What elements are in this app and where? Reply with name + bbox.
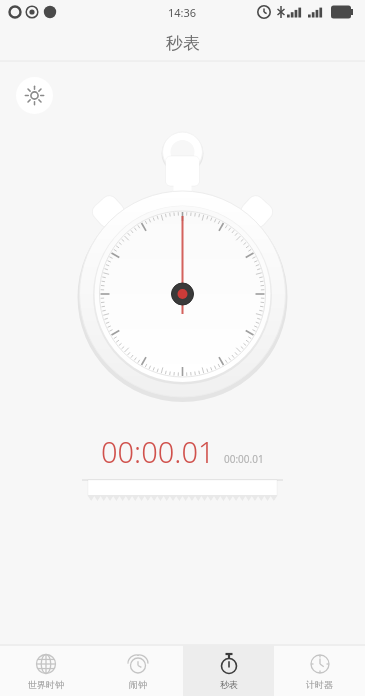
staticText: 计时器 [306,679,333,690]
staticText: 世界时钟 [28,679,64,690]
staticText: 闹钟 [129,679,147,690]
button[interactable]: 世界时钟 [0,645,92,696]
button[interactable]: 计时器 [274,645,365,696]
button[interactable]: Brightness [16,77,53,114]
staticText: 00:00.01 [224,452,264,466]
staticText: 14:36 [168,5,197,20]
staticText: 00:00.01 [101,432,215,471]
staticText: 秒表 [220,679,238,690]
button[interactable]: 秒表 [183,645,274,696]
staticText: 秒表 [166,33,200,54]
button[interactable]: 闹钟 [92,645,183,696]
